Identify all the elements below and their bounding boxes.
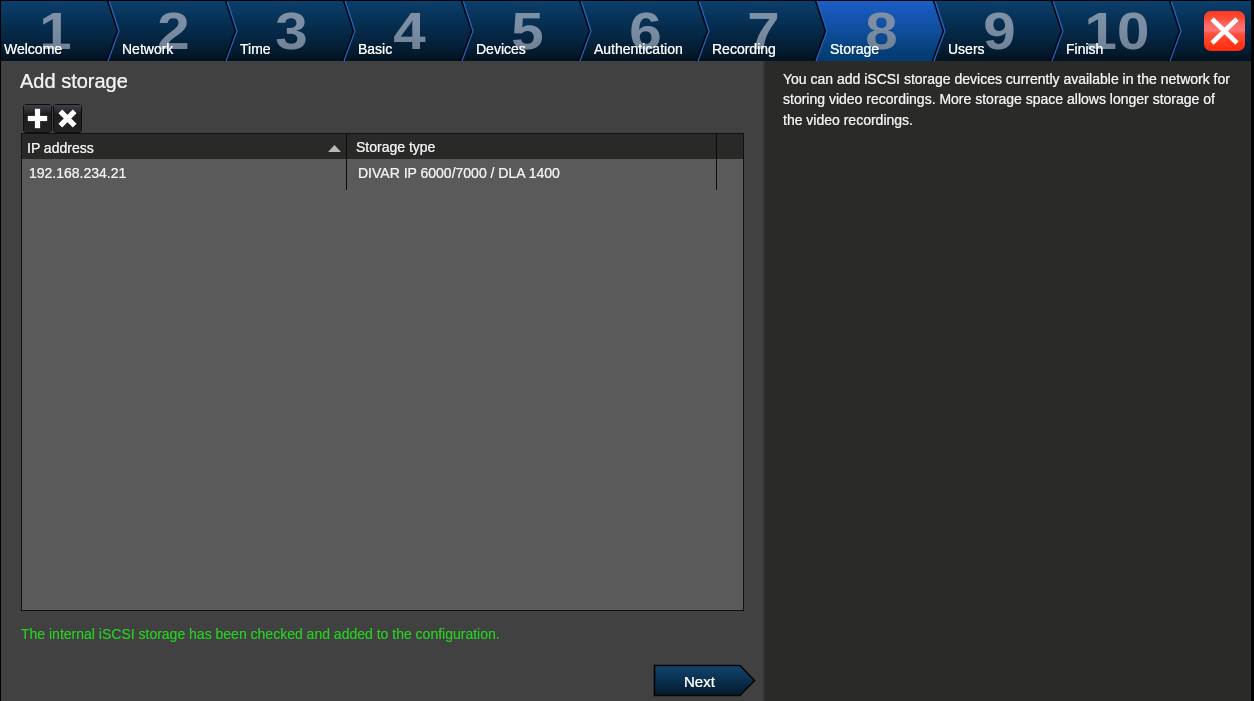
button[interactable]: Next xyxy=(653,664,756,697)
staticText: 1 xyxy=(39,2,72,60)
staticText: 9 xyxy=(983,2,1016,60)
staticText: Network xyxy=(122,41,174,57)
staticText: Devices xyxy=(476,41,526,57)
button[interactable]: IP address xyxy=(22,134,346,159)
staticText: 8 xyxy=(865,2,898,60)
staticText: 5 xyxy=(511,2,544,60)
staticText: 2 xyxy=(157,2,190,60)
staticText: Finish xyxy=(1066,41,1104,57)
staticText: Storage xyxy=(830,41,880,57)
staticText: Time xyxy=(240,41,271,57)
staticText: Users xyxy=(948,41,985,57)
staticText: 10 xyxy=(1084,2,1149,60)
button[interactable]: 2 xyxy=(109,0,227,61)
button[interactable]: 10 xyxy=(1053,0,1171,61)
button[interactable]: Add xyxy=(24,105,51,132)
staticText: Authentication xyxy=(594,41,683,57)
staticText: DIVAR IP 6000/7000 / DLA 1400 xyxy=(358,165,560,181)
button[interactable]: Delete xyxy=(54,105,81,132)
button[interactable]: 192.168.234.21 xyxy=(22,159,743,190)
button[interactable]: 6 xyxy=(581,0,699,61)
button[interactable]: 1 xyxy=(0,0,109,61)
button[interactable]: 9 xyxy=(935,0,1053,61)
button[interactable]: 5 xyxy=(463,0,581,61)
staticText: Recording xyxy=(712,41,776,57)
button[interactable]: 7 xyxy=(699,0,817,61)
staticText: 3 xyxy=(275,2,308,60)
staticText: Add storage xyxy=(20,70,128,92)
staticText: Storage type xyxy=(356,139,436,155)
staticText: 4 xyxy=(393,2,426,60)
button[interactable]: 3 xyxy=(227,0,345,61)
button[interactable]: 4 xyxy=(345,0,463,61)
button[interactable]: Close xyxy=(1204,11,1245,51)
staticText: You can add iSCSI storage devices curren… xyxy=(783,71,1233,128)
staticText: Basic xyxy=(358,41,393,57)
button[interactable]: Storage type xyxy=(347,134,716,159)
staticText: 192.168.234.21 xyxy=(29,165,127,181)
staticText: 7 xyxy=(747,2,780,60)
staticText: The internal iSCSI storage has been chec… xyxy=(21,626,500,642)
staticText: 6 xyxy=(629,2,662,60)
staticText: IP address xyxy=(27,140,94,156)
button[interactable]: 8 xyxy=(817,0,935,61)
staticText: Next xyxy=(684,673,715,690)
staticText: Welcome xyxy=(4,41,63,57)
